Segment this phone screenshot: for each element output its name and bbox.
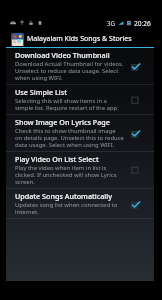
staticText: Download Video Thumbnail bbox=[15, 50, 110, 60]
staticText: Selecting this will show items in a simp… bbox=[15, 97, 124, 112]
staticText: 3G bbox=[107, 19, 116, 27]
button[interactable]: Play Video On List Select bbox=[6, 152, 154, 188]
staticText: Update Songs Automatically bbox=[15, 191, 113, 201]
staticText: Download Actual Thumbnail for videos. Un… bbox=[15, 60, 124, 82]
button[interactable]: Update Songs Automatically bbox=[6, 189, 154, 218]
staticText: Malayalam Kids Songs & Stories bbox=[27, 34, 132, 44]
staticText: Use Simple List bbox=[15, 87, 67, 97]
staticText: Updates song list when connected to inte… bbox=[15, 201, 124, 216]
staticText: Show Image On Lyrics Page bbox=[15, 117, 110, 127]
staticText: Play Video On List Select bbox=[15, 154, 99, 164]
button[interactable]: Show Image On Lyrics Page bbox=[6, 115, 154, 151]
button[interactable]: Download Video Thumbnail bbox=[6, 48, 154, 84]
button[interactable]: Use Simple List bbox=[6, 85, 154, 114]
staticText: Play the video when item in list is clic… bbox=[15, 164, 124, 186]
staticText: Check this to show thumbnail image on de… bbox=[15, 127, 124, 149]
staticText: 20:26 bbox=[134, 19, 151, 28]
